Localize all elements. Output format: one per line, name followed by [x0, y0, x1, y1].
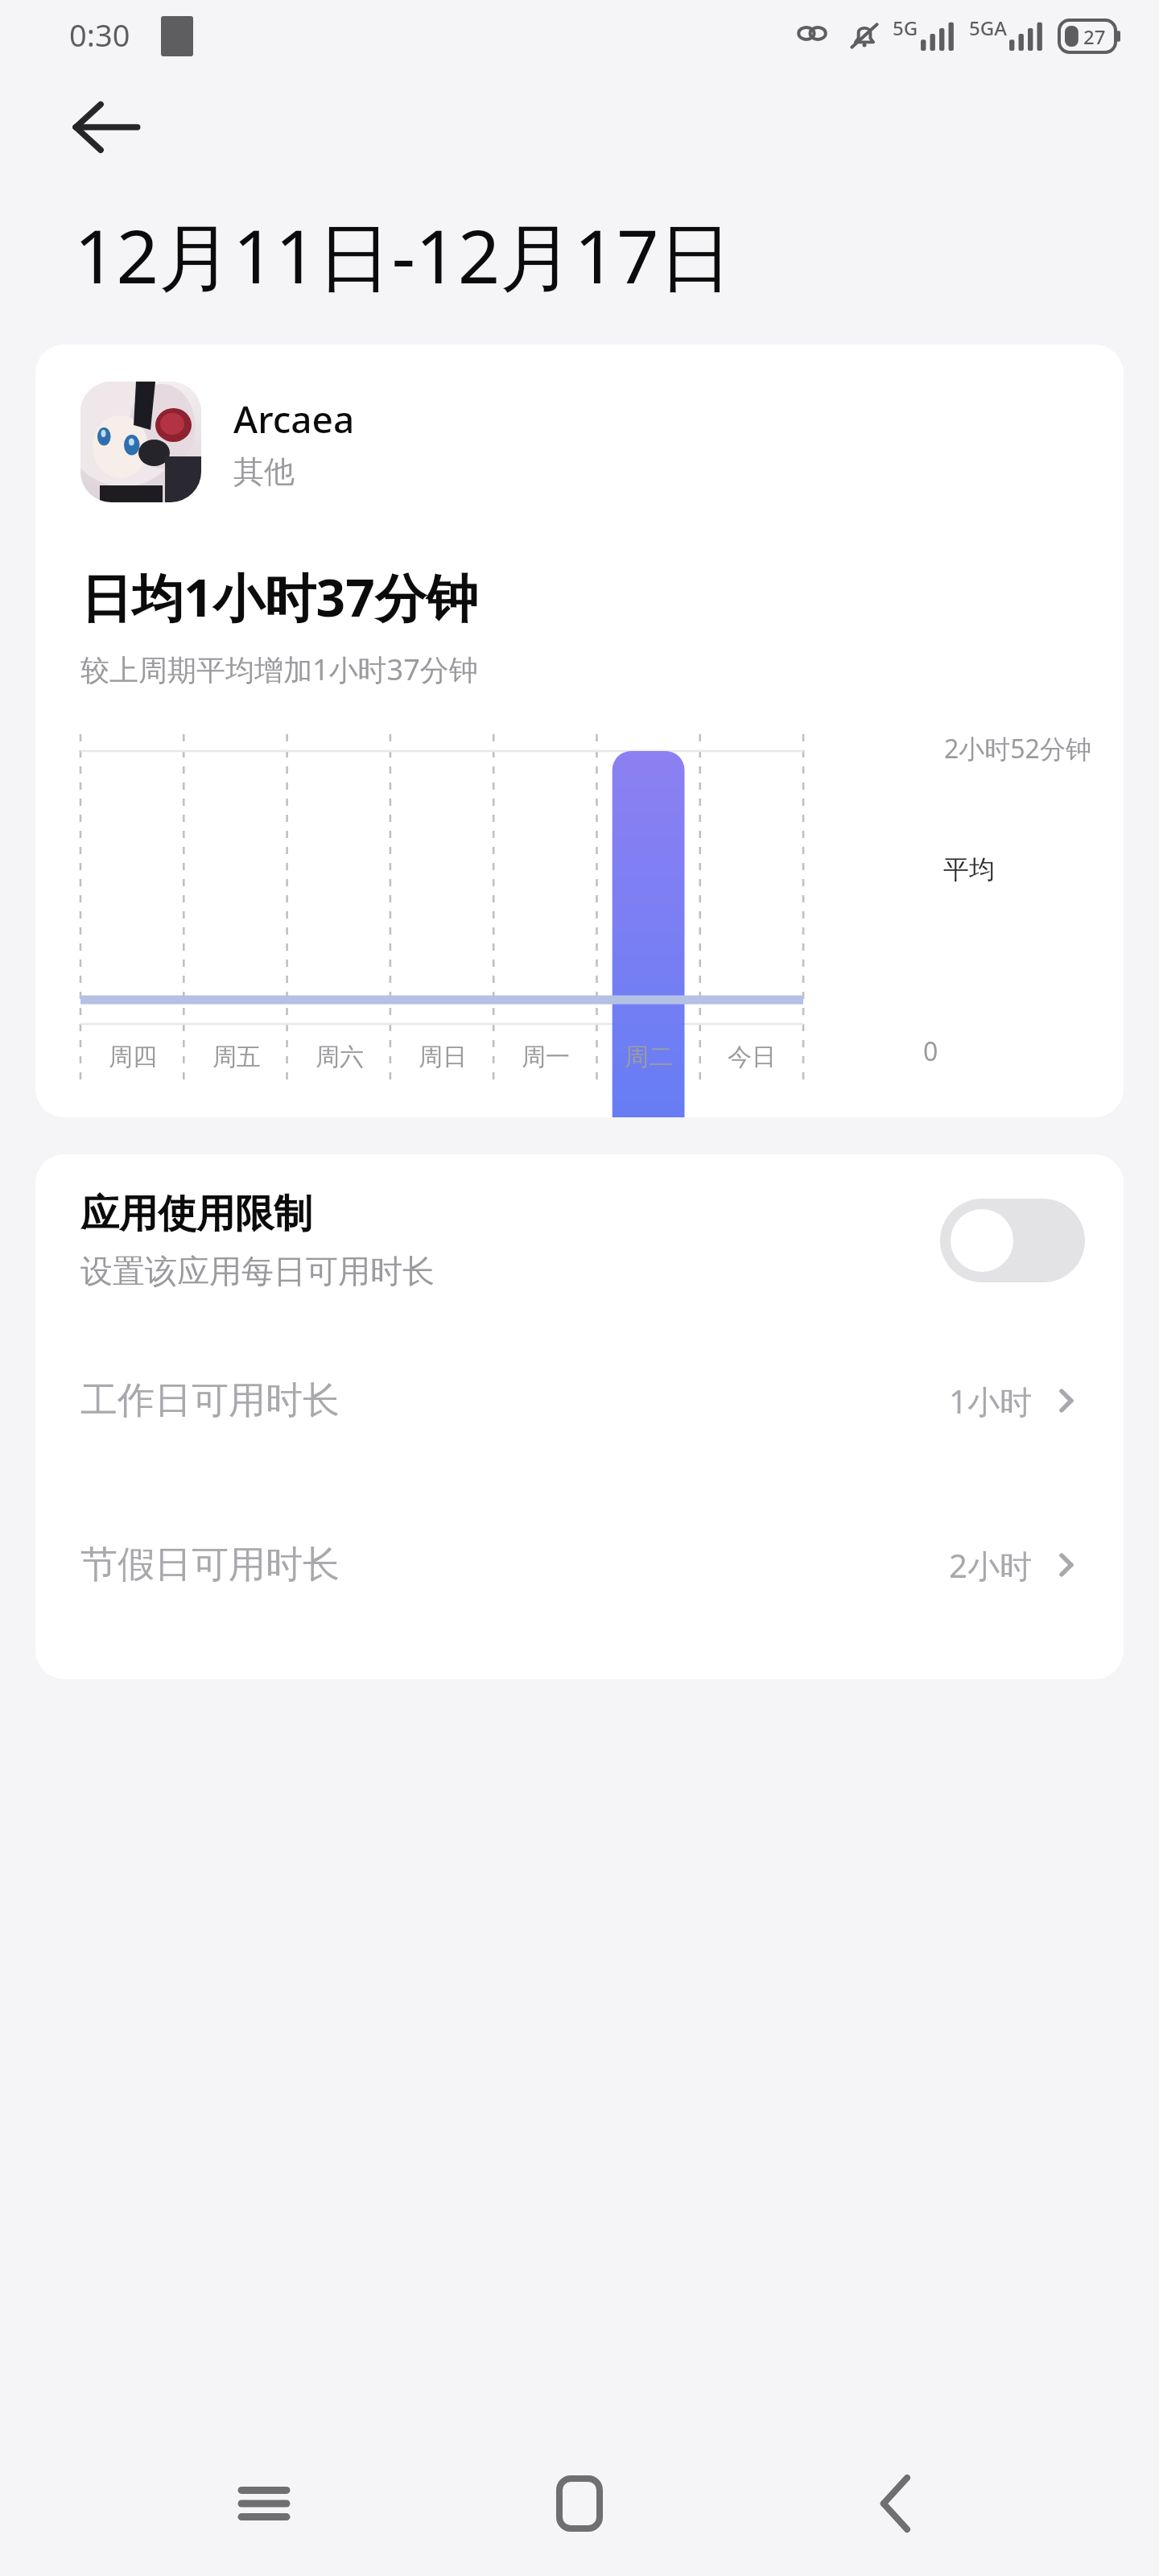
staticText: 2小时52分钟 [944, 731, 1091, 766]
staticText: 周一 [522, 1042, 570, 1072]
staticText: 平均 [943, 853, 995, 885]
staticText: 5GA [969, 14, 1007, 41]
staticText: 设置该应用每日可用时长 [80, 1251, 435, 1291]
button[interactable]: 应用使用限制 [35, 1154, 1124, 1319]
button[interactable]: Arcaea [35, 345, 1124, 1117]
staticText: 2小时 [949, 1543, 1032, 1587]
staticText: 周六 [316, 1042, 364, 1072]
staticText: 12月11日-12月17日 [74, 204, 733, 306]
staticText: 0 [923, 1034, 938, 1069]
staticText: 1小时 [949, 1379, 1032, 1423]
button[interactable]: Back [843, 2451, 948, 2556]
button[interactable]: Recents [212, 2451, 316, 2556]
staticText: 0:30 [69, 14, 130, 56]
staticText: 工作日可用时长 [80, 1377, 949, 1424]
button[interactable]: 应用使用限制开关 [940, 1199, 1085, 1282]
button[interactable]: 工作日可用时长 [35, 1319, 1124, 1483]
button[interactable]: Home [527, 2451, 632, 2556]
button[interactable]: 节假日可用时长 [35, 1483, 1124, 1647]
staticText: 5G [893, 14, 918, 41]
staticText: 节假日可用时长 [80, 1542, 949, 1588]
staticText: 27 [1083, 23, 1106, 50]
staticText: 周五 [212, 1042, 261, 1072]
staticText: Arcaea [233, 394, 355, 444]
staticText: 应用使用限制 [80, 1190, 312, 1238]
button[interactable]: Back [61, 82, 151, 172]
staticText: 周日 [419, 1042, 467, 1072]
staticText: 日均1小时37分钟 [80, 562, 478, 632]
staticText: 周二 [625, 1042, 673, 1072]
staticText: 今日 [728, 1042, 776, 1072]
staticText: 周四 [109, 1042, 157, 1072]
staticText: 其他 [233, 452, 295, 491]
staticText: 较上周期平均增加1小时37分钟 [80, 650, 478, 689]
